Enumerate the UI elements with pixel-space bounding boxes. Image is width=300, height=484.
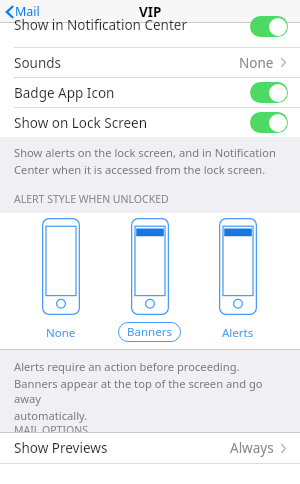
button[interactable]: None [33, 218, 89, 344]
staticText: None [239, 54, 274, 72]
staticText: Alerts [222, 325, 254, 341]
button[interactable]: Toggle setting [250, 112, 288, 133]
button[interactable]: Toggle setting [250, 82, 288, 103]
staticText: Always [230, 439, 274, 457]
staticText: Show in Notification Center [14, 16, 188, 34]
staticText: Show on Lock Screen [14, 114, 148, 132]
staticText: Alerts require an action before proceedi… [14, 359, 240, 374]
staticText: VIP [139, 3, 162, 21]
staticText: Sounds [14, 54, 62, 72]
button[interactable]: Badge App Icon [0, 78, 300, 107]
staticText: None [46, 325, 76, 341]
staticText: Mail [15, 3, 40, 20]
staticText: Banners [127, 324, 172, 340]
staticText: MAIL OPTIONS [14, 423, 88, 432]
staticText: ALERT STYLE WHEN UNLOCKED [14, 192, 169, 206]
button[interactable]: Alerts [209, 218, 267, 344]
staticText: automatically. [14, 408, 88, 423]
button[interactable]: Banners [114, 218, 185, 342]
button[interactable]: Show Previews [0, 433, 300, 463]
button[interactable]: Sounds [0, 48, 300, 77]
button[interactable]: Show on Lock Screen [0, 108, 300, 137]
button[interactable]: Toggle setting [250, 16, 288, 37]
staticText: Show Previews [14, 439, 108, 457]
staticText: Show alerts on the lock screen, and in N… [14, 145, 276, 160]
staticText: Center when it is accessed from the lock… [14, 162, 266, 177]
button[interactable]: Show in Notification Center [0, 23, 300, 47]
button[interactable]: Back to Mail [0, 0, 50, 23]
staticText: Banners appear at the top of the screen … [14, 376, 286, 406]
staticText: Badge App Icon [14, 84, 115, 102]
